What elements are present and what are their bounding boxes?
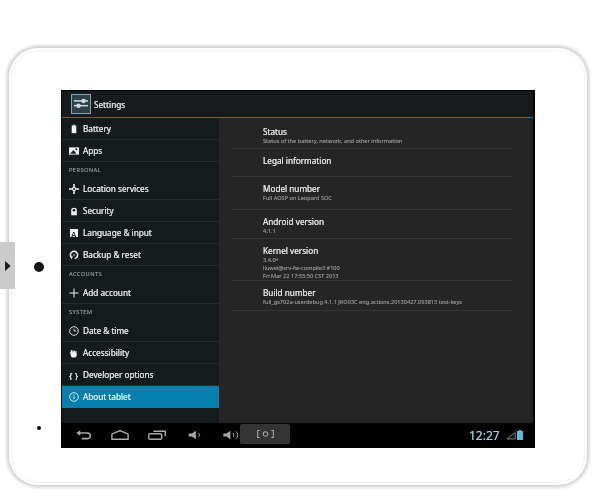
staticText: Kernel version xyxy=(263,245,319,256)
staticText: Full AOSP on Leopard SOC xyxy=(263,194,332,202)
staticText: Settings xyxy=(94,99,126,110)
button[interactable]: Screenshot xyxy=(240,424,290,444)
staticText: Status of the battery, network, and othe… xyxy=(263,137,403,145)
button[interactable]: Date & time xyxy=(62,320,219,342)
button[interactable]: Add account xyxy=(62,282,219,304)
staticText: About tablet xyxy=(83,391,131,402)
button[interactable]: { } xyxy=(62,364,219,386)
staticText: Security xyxy=(83,205,114,216)
staticText: A xyxy=(71,229,77,237)
button[interactable]: Apps xyxy=(62,140,219,162)
staticText: 3.4.0+ xyxy=(263,256,279,264)
staticText: Android version xyxy=(263,216,324,227)
staticText: Language & input xyxy=(83,227,152,238)
staticText: Model number xyxy=(263,183,321,194)
button[interactable]: Legal information xyxy=(219,149,533,177)
button[interactable]: Back xyxy=(72,423,96,447)
button[interactable]: Kernel version xyxy=(219,239,533,281)
staticText: SYSTEM xyxy=(69,308,93,316)
staticText: { } xyxy=(69,370,79,380)
staticText: Date & time xyxy=(83,325,129,336)
button[interactable]: Model number xyxy=(219,177,533,210)
staticText: Developer options xyxy=(83,369,154,380)
button[interactable]: A xyxy=(62,222,219,244)
staticText: Build number xyxy=(263,287,316,298)
staticText: Battery xyxy=(83,123,112,134)
staticText: 12:27 xyxy=(469,427,500,443)
button[interactable]: Battery xyxy=(62,118,219,140)
staticText: PERSONAL xyxy=(69,166,101,174)
staticText: Legal information xyxy=(263,155,332,166)
staticText: liuwei@srv-fw-compile3 #100 xyxy=(263,264,340,272)
button[interactable]: Volume up xyxy=(219,423,243,447)
button[interactable]: Recent apps xyxy=(145,423,169,447)
button[interactable]: Volume down xyxy=(183,423,207,447)
staticText: full_gs702a-userdebug 4.1.1 JRO03C eng.a… xyxy=(263,298,462,306)
button[interactable]: About tablet xyxy=(62,386,219,408)
button[interactable]: Location services xyxy=(62,178,219,200)
staticText: 4.1.1 xyxy=(263,227,276,235)
staticText: Add account xyxy=(83,287,131,298)
button[interactable]: Status xyxy=(219,120,533,149)
staticText: ACCOUNTS xyxy=(69,270,103,278)
button[interactable]: Backup & reset xyxy=(62,244,219,266)
button[interactable]: Next image xyxy=(0,242,15,289)
button[interactable]: Android version xyxy=(219,210,533,239)
button[interactable]: Settings xyxy=(62,91,533,117)
button[interactable]: Security xyxy=(62,200,219,222)
staticText: Status xyxy=(263,126,287,137)
staticText: Location services xyxy=(83,183,149,194)
staticText: Fri Mar 22 17:55:50 CST 2013 xyxy=(263,272,339,280)
button[interactable]: Accessibility xyxy=(62,342,219,364)
staticText: Apps xyxy=(83,145,103,156)
button[interactable]: Build number xyxy=(219,281,533,311)
staticText: Accessibility xyxy=(83,347,130,358)
button[interactable]: Home xyxy=(108,423,132,447)
staticText: Backup & reset xyxy=(83,249,141,260)
